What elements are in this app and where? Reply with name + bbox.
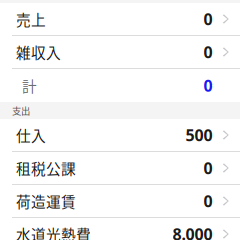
button[interactable]: 水道光熱費 bbox=[0, 218, 240, 240]
staticText: 0 bbox=[203, 41, 212, 63]
staticText: 租税公課 bbox=[16, 157, 76, 179]
staticText: 0 bbox=[203, 157, 212, 179]
staticText: 荷造運賃 bbox=[16, 190, 76, 212]
staticText: 0 bbox=[203, 75, 212, 96]
staticText: 計 bbox=[22, 75, 37, 96]
button[interactable]: 荷造運賃 bbox=[0, 185, 240, 217]
button[interactable]: 雑収入 bbox=[0, 36, 240, 68]
staticText: 雑収入 bbox=[16, 41, 61, 63]
button[interactable]: 租税公課 bbox=[0, 152, 240, 184]
staticText: 0 bbox=[203, 8, 212, 30]
staticText: 500 bbox=[185, 124, 212, 146]
button[interactable]: 売上 bbox=[0, 3, 240, 35]
staticText: 8.000 bbox=[172, 223, 212, 240]
staticText: 売上 bbox=[16, 8, 46, 30]
staticText: 0 bbox=[203, 190, 212, 212]
staticText: 支出 bbox=[12, 104, 30, 117]
button[interactable]: 計 bbox=[0, 69, 240, 102]
staticText: 水道光熱費 bbox=[16, 223, 91, 240]
staticText: 仕入 bbox=[16, 124, 46, 146]
button[interactable]: 仕入 bbox=[0, 119, 240, 151]
